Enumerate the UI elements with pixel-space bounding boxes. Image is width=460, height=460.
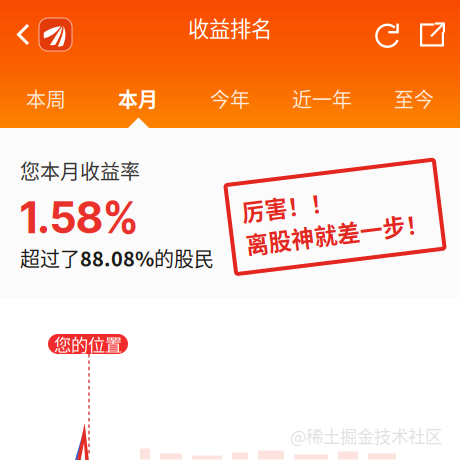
staticText: 本月 [118, 84, 158, 113]
staticText: 至今 [394, 84, 434, 113]
staticText: 超过了88.08%的股民 [20, 244, 214, 272]
button[interactable]: 您的位置 [48, 334, 128, 354]
staticText: 1.58% [20, 192, 138, 244]
button[interactable]: 至今 [368, 69, 460, 128]
staticText: @稀土掘金技术社区 [290, 423, 442, 448]
staticText: 离股神就差一步！ [243, 217, 427, 250]
staticText: 您本月收益率 [20, 156, 140, 185]
button[interactable]: 今年 [184, 69, 276, 128]
button[interactable]: Share [410, 9, 460, 59]
button[interactable]: Refresh [365, 9, 410, 60]
staticText: 近一年 [292, 84, 352, 113]
button[interactable]: 本月 [92, 69, 184, 128]
staticText: 本周 [26, 84, 66, 113]
button[interactable]: App home [39, 8, 72, 61]
staticText: 收益排名 [188, 12, 272, 43]
button[interactable]: Back [0, 11, 39, 58]
staticText: 今年 [210, 84, 250, 113]
button[interactable]: 近一年 [276, 69, 368, 128]
staticText: 厉害！！ [243, 184, 335, 217]
button[interactable]: 本周 [0, 69, 92, 128]
staticText: 您的位置 [54, 331, 122, 357]
